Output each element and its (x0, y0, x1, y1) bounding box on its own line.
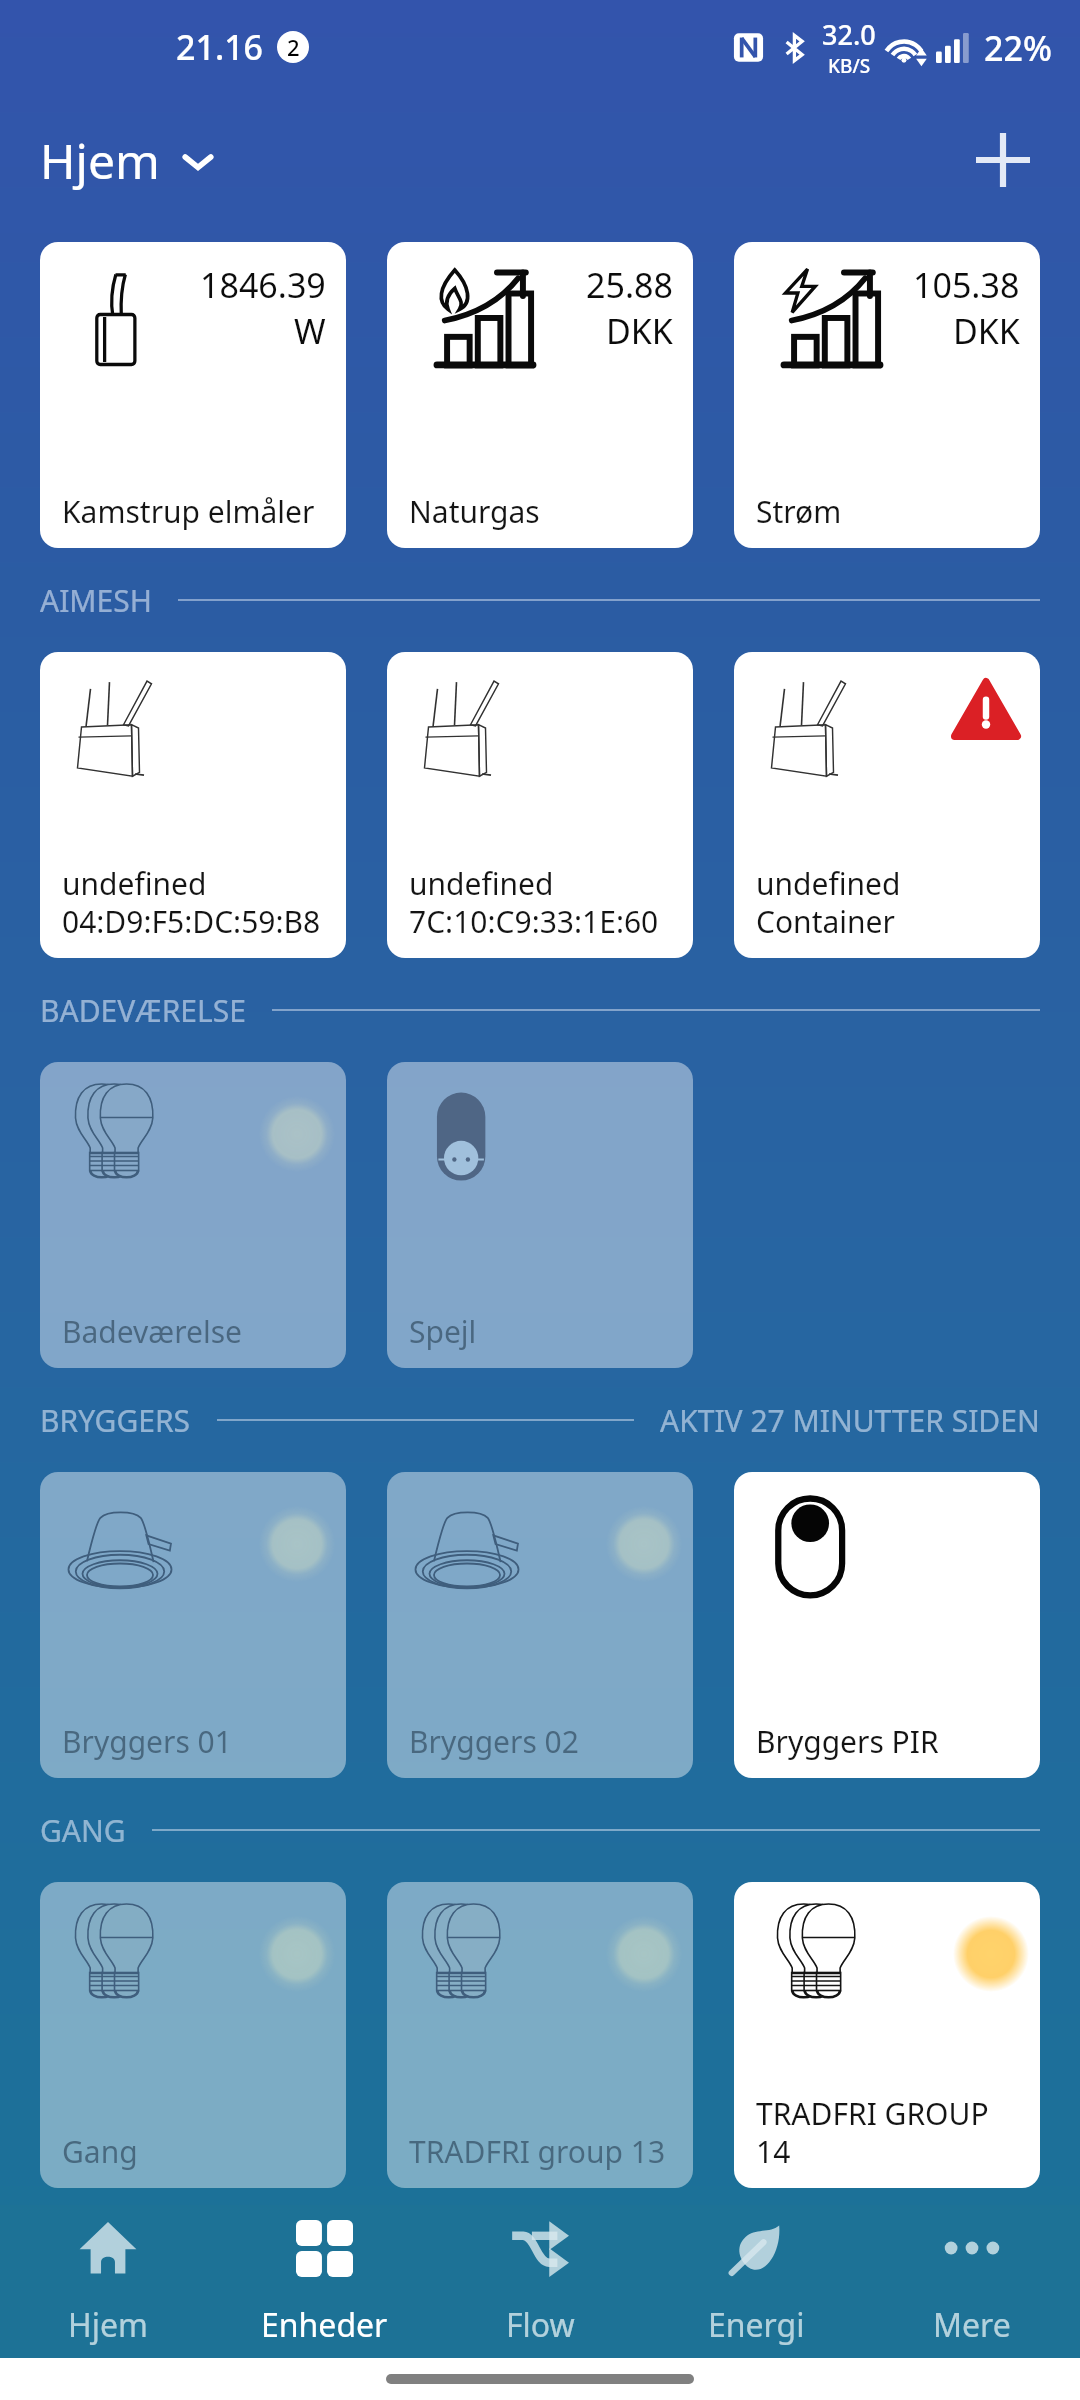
staticText: 32.0 (822, 16, 876, 53)
button[interactable]: Gang (40, 1882, 346, 2188)
button[interactable]: 25.88 (387, 242, 693, 548)
staticText: Gang (62, 2131, 138, 2172)
button[interactable]: TRADFRI group 13 (387, 1882, 693, 2188)
button[interactable]: Mere (864, 2205, 1080, 2358)
staticText: 25.88 (586, 262, 673, 308)
staticText: Enheder (261, 2303, 388, 2347)
button[interactable]: 1846.39 (40, 242, 346, 548)
button[interactable]: Hjem (40, 128, 218, 193)
staticText: 2 (287, 32, 300, 62)
staticText: Hjem (68, 2303, 148, 2347)
staticText: DKK (953, 308, 1020, 354)
button[interactable]: Bryggers 02 (387, 1472, 693, 1778)
staticText: Badeværelse (62, 1311, 242, 1352)
staticText: Hjem (40, 128, 160, 193)
staticText: Strøm (756, 491, 842, 532)
button[interactable]: Energi (648, 2205, 864, 2358)
button[interactable]: undefined 7C:10:C9:33:1E:60 (387, 652, 693, 958)
button[interactable]: Bryggers PIR (734, 1472, 1040, 1778)
button[interactable]: TRADFRI GROUP 14 (734, 1882, 1040, 2188)
staticText: BRYGGERS (40, 1400, 191, 1441)
staticText: BADEVÆRELSE (40, 990, 246, 1031)
staticText: 21.16 (176, 24, 264, 70)
staticText: TRADFRI GROUP 14 (756, 2093, 1028, 2172)
staticText: 1846.39 (200, 262, 326, 308)
button[interactable]: Hjem (0, 2205, 216, 2358)
button[interactable]: Spejl (387, 1062, 693, 1368)
staticText: GANG (40, 1810, 126, 1851)
button[interactable]: Bryggers 01 (40, 1472, 346, 1778)
staticText: Flow (506, 2303, 575, 2347)
staticText: undefined Container (756, 863, 901, 942)
staticText: Energi (708, 2303, 805, 2347)
staticText: undefined 7C:10:C9:33:1E:60 (409, 863, 659, 942)
button[interactable]: undefined Container (734, 652, 1040, 958)
staticText: 22% (984, 25, 1052, 71)
button[interactable]: Enheder (216, 2205, 432, 2358)
button[interactable]: Flow (432, 2205, 648, 2358)
staticText: AIMESH (40, 580, 152, 621)
staticText: 105.38 (913, 262, 1020, 308)
staticText: Bryggers 02 (409, 1721, 579, 1762)
button[interactable]: Badeværelse (40, 1062, 346, 1368)
staticText: Naturgas (409, 491, 540, 532)
staticText: KB/S (828, 53, 871, 79)
staticText: Spejl (409, 1311, 477, 1352)
button[interactable]: undefined 04:D9:F5:DC:59:B8 (40, 652, 346, 958)
staticText: AKTIV 27 MINUTTER SIDEN (660, 1400, 1040, 1441)
staticText: Kamstrup elmåler (62, 491, 315, 532)
button[interactable]: Add (968, 125, 1038, 195)
staticText: Bryggers PIR (756, 1721, 939, 1762)
staticText: DKK (606, 308, 673, 354)
staticText: Bryggers 01 (62, 1721, 232, 1762)
staticText: TRADFRI group 13 (409, 2131, 666, 2172)
button[interactable]: 105.38 (734, 242, 1040, 548)
staticText: undefined 04:D9:F5:DC:59:B8 (62, 863, 321, 942)
staticText: Mere (933, 2303, 1011, 2347)
staticText: W (294, 308, 326, 354)
